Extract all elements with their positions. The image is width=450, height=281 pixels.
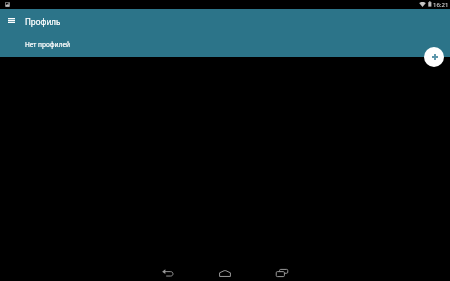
button[interactable]: Recent apps	[262, 264, 302, 281]
button[interactable]: Add profile	[424, 47, 444, 67]
button[interactable]: Home	[205, 264, 245, 281]
button[interactable]: Open navigation menu	[3, 12, 20, 29]
button[interactable]: Back	[148, 264, 188, 281]
staticText: Нет профилей	[25, 40, 71, 49]
button[interactable]: Нет профилей	[0, 35, 450, 53]
staticText: Профиль	[25, 16, 61, 27]
staticText: 16:21	[433, 1, 449, 9]
